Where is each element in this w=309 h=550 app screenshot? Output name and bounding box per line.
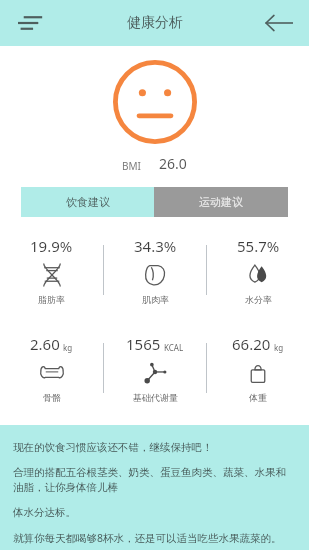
- staticText: 饮食建议: [66, 195, 110, 209]
- button[interactable]: 饮食建议: [21, 187, 154, 217]
- staticText: 34.3%: [134, 236, 177, 256]
- button[interactable]: 2.60: [0, 327, 103, 409]
- button[interactable]: 运动建议: [154, 187, 288, 217]
- staticText: 水分率: [245, 294, 272, 305]
- staticText: 基础代谢量: [133, 392, 178, 403]
- staticText: BMI: [122, 159, 141, 173]
- button[interactable]: 66.20: [207, 327, 309, 409]
- staticText: 体重: [249, 392, 267, 403]
- staticText: 19.9%: [30, 236, 73, 256]
- staticText: 合理的搭配五谷根茎类、奶类、蛋豆鱼肉类、蔬菜、水果和油脂，让你身体倍儿棒: [13, 466, 296, 494]
- staticText: 肌肉率: [142, 294, 169, 305]
- staticText: 健康分析: [127, 14, 183, 32]
- staticText: 现在的饮食习惯应该还不错，继续保持吧！: [13, 441, 296, 454]
- staticText: 55.7%: [237, 236, 280, 256]
- staticText: 2.60: [30, 334, 60, 354]
- staticText: 脂肪率: [38, 294, 65, 305]
- staticText: 就算你每天都喝够8杯水，还是可以适当吃些水果蔬菜的。: [13, 531, 296, 545]
- staticText: 骨骼: [43, 392, 61, 403]
- staticText: 1565: [126, 334, 161, 354]
- staticText: 体水分达标。: [13, 506, 296, 519]
- staticText: 66.20: [232, 334, 271, 354]
- button[interactable]: Menu: [14, 6, 48, 40]
- staticText: kg: [63, 342, 73, 353]
- button[interactable]: Back: [261, 5, 297, 41]
- button[interactable]: 55.7%: [207, 229, 309, 311]
- staticText: 26.0: [159, 154, 187, 173]
- staticText: kg: [274, 342, 284, 353]
- button[interactable]: 34.3%: [104, 229, 206, 311]
- staticText: 运动建议: [199, 195, 243, 209]
- button[interactable]: 19.9%: [0, 229, 103, 311]
- button[interactable]: 1565: [104, 327, 206, 409]
- staticText: KCAL: [164, 342, 184, 353]
